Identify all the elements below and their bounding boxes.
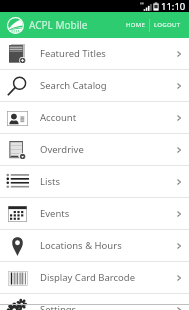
staticText: Lists bbox=[40, 175, 60, 188]
staticText: ACPL Mobile bbox=[29, 18, 88, 32]
button[interactable]: Locations & Hours bbox=[0, 230, 189, 262]
staticText: Events bbox=[40, 207, 70, 220]
button[interactable]: Overdrive bbox=[0, 134, 189, 166]
button[interactable]: Events bbox=[0, 198, 189, 230]
staticText: HOME bbox=[126, 21, 146, 29]
button[interactable]: LOGOUT bbox=[150, 12, 185, 38]
staticText: 11:10 bbox=[161, 0, 186, 12]
staticText: Locations & Hours bbox=[40, 239, 122, 252]
button[interactable]: Account bbox=[0, 102, 189, 134]
button[interactable]: Search Catalog bbox=[0, 70, 189, 102]
staticText: Featured Titles bbox=[40, 47, 106, 60]
staticText: Account bbox=[40, 111, 77, 124]
staticText: Search Catalog bbox=[40, 79, 107, 92]
staticText: Overdrive bbox=[40, 143, 84, 156]
button[interactable]: Lists bbox=[0, 166, 189, 198]
button[interactable]: HOME bbox=[121, 12, 149, 38]
button[interactable]: Settings bbox=[0, 294, 189, 310]
button[interactable]: Display Card Barcode bbox=[0, 262, 189, 294]
staticText: Settings bbox=[40, 303, 77, 310]
other: ACPL logo bbox=[7, 17, 24, 34]
button[interactable]: Featured Titles bbox=[0, 38, 189, 70]
staticText: LOGOUT bbox=[154, 21, 181, 29]
staticText: Display Card Barcode bbox=[40, 271, 136, 284]
